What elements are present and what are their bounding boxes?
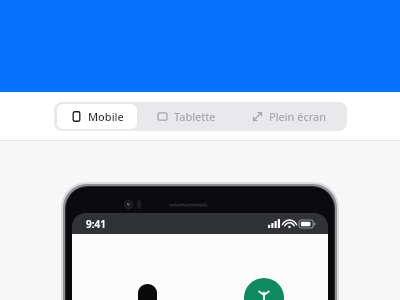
- staticText: Mobile: [88, 109, 124, 124]
- staticText: Tablette: [174, 109, 216, 124]
- staticText: 9:41: [86, 217, 106, 231]
- button[interactable]: Aperçu mobile: [61, 182, 339, 300]
- button[interactable]: Tablette: [143, 102, 229, 131]
- staticText: Plein écran: [269, 109, 326, 124]
- button[interactable]: Mobile: [57, 104, 137, 129]
- button[interactable]: Plein écran: [233, 102, 344, 131]
